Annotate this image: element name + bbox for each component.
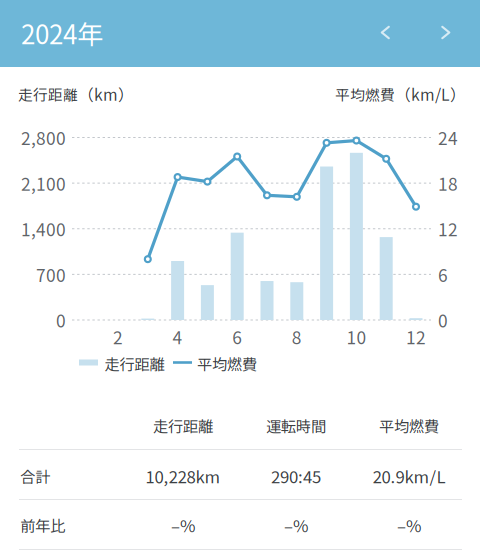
staticText: （km/L） (395, 83, 466, 105)
staticText: 2,100 (21, 171, 66, 196)
staticText: 8 (292, 324, 302, 349)
staticText: 平均燃費 (197, 352, 257, 374)
staticText: 合計 (20, 465, 50, 487)
staticText: 走行距離 (18, 83, 78, 105)
staticText: 平均燃費 (379, 414, 439, 436)
staticText: （km） (78, 83, 134, 105)
staticText: 平均燃費 (335, 83, 395, 105)
staticText: 2024年 (21, 14, 103, 52)
staticText: 走行距離 (104, 352, 164, 374)
staticText: 前年比 (20, 514, 65, 536)
staticText: 24 (438, 125, 458, 150)
staticText: 10,228km (145, 464, 220, 488)
staticText: 10 (346, 324, 366, 349)
staticText: 12 (438, 216, 458, 241)
staticText: 運転時間 (266, 414, 326, 436)
button[interactable]: 前の年 (363, 10, 407, 54)
staticText: 700 (36, 262, 66, 287)
staticText: 走行距離 (153, 414, 213, 436)
staticText: –% (284, 513, 308, 537)
staticText: 0 (438, 307, 448, 333)
staticText: –% (171, 513, 195, 537)
staticText: 0 (56, 307, 66, 333)
staticText: 1,400 (21, 216, 66, 241)
staticText: 18 (438, 171, 458, 196)
staticText: 4 (173, 324, 183, 349)
staticText: 2,800 (21, 125, 66, 150)
staticText: 290:45 (271, 464, 321, 488)
staticText: –% (397, 513, 421, 537)
staticText: 12 (406, 324, 426, 349)
button[interactable]: 次の年 (424, 10, 468, 54)
staticText: 20.9km/L (372, 464, 445, 488)
staticText: 2 (113, 324, 123, 349)
staticText: 6 (438, 262, 448, 287)
staticText: 6 (232, 324, 242, 349)
